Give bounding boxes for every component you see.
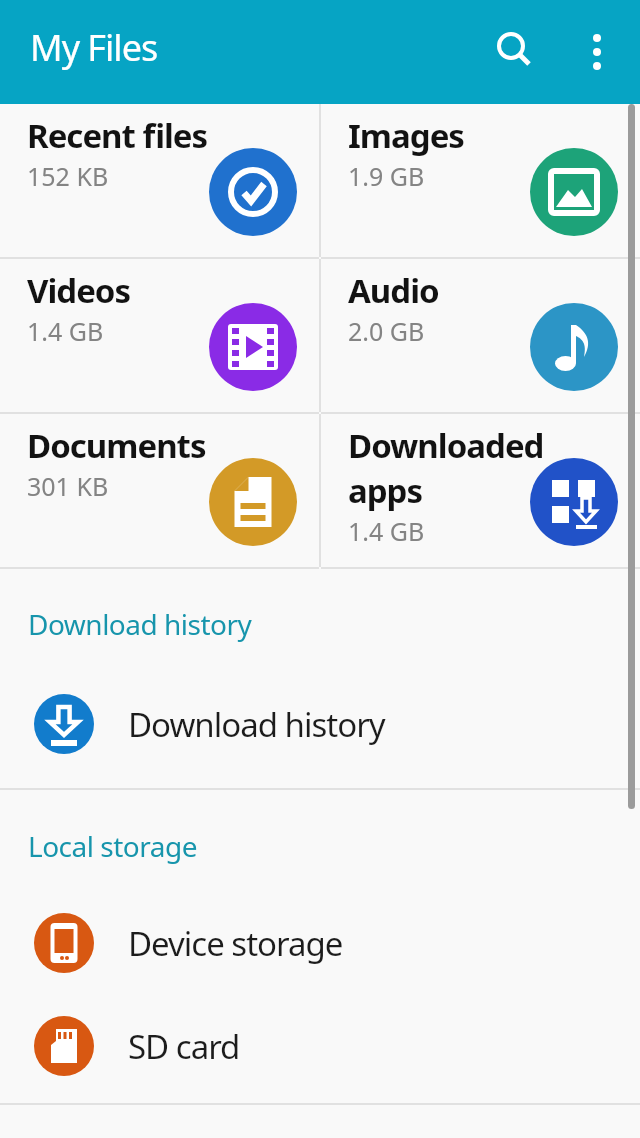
button[interactable]: Documents	[0, 414, 319, 569]
staticText: apps	[348, 468, 423, 513]
button[interactable]: Device storage	[0, 913, 640, 973]
button[interactable]: Downloaded	[321, 414, 640, 569]
staticText: Videos	[27, 268, 131, 313]
staticText: Audio	[348, 268, 439, 313]
staticText: Download history	[128, 702, 385, 747]
staticText: Local storage	[28, 827, 197, 865]
button[interactable]: Download history	[0, 694, 640, 754]
button[interactable]: Images	[321, 104, 640, 259]
button[interactable]	[486, 20, 550, 84]
staticText: 301 KB	[27, 469, 109, 503]
staticText: Documents	[27, 423, 206, 468]
staticText: Downloaded	[348, 423, 544, 468]
button[interactable]: SD card	[0, 1016, 640, 1076]
button[interactable]	[572, 27, 622, 77]
staticText: SD card	[128, 1024, 240, 1069]
staticText: Device storage	[128, 921, 343, 966]
staticText: 1.4 GB	[348, 514, 425, 548]
staticText: 152 KB	[27, 159, 109, 193]
staticText: Images	[348, 113, 464, 158]
button[interactable]: Videos	[0, 259, 319, 414]
staticText: Download history	[28, 605, 252, 643]
staticText: Recent files	[27, 113, 208, 158]
staticText: 2.0 GB	[348, 314, 425, 348]
button[interactable]: Recent files	[0, 104, 319, 259]
staticText: My Files	[30, 23, 158, 72]
button[interactable]: Audio	[321, 259, 640, 414]
staticText: 1.9 GB	[348, 159, 425, 193]
staticText: 1.4 GB	[27, 314, 104, 348]
